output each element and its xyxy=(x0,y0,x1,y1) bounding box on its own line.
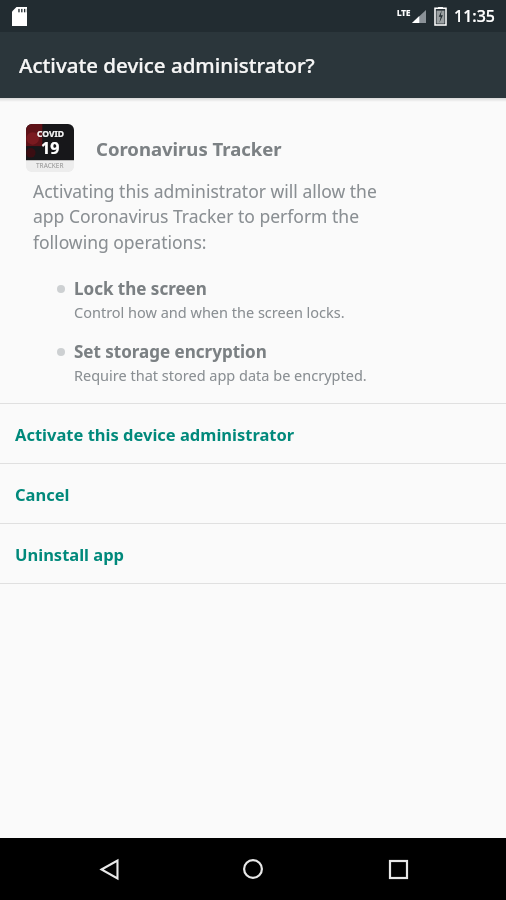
button[interactable]: Home xyxy=(217,838,289,900)
staticText: LTE xyxy=(397,7,411,18)
staticText: Uninstall app xyxy=(15,543,125,565)
button[interactable]: Recent apps xyxy=(362,838,434,900)
button[interactable]: Cancel xyxy=(0,464,506,523)
staticText: Cancel xyxy=(15,483,70,505)
button[interactable]: Back xyxy=(73,838,145,900)
staticText: Activating this administrator will allow… xyxy=(33,179,377,255)
button[interactable]: Uninstall app xyxy=(0,524,506,583)
staticText: Activate device administrator? xyxy=(19,51,315,79)
staticText: Activate this device administrator xyxy=(15,423,295,445)
staticText: Set storage encryption xyxy=(74,340,267,363)
button[interactable]: Activate this device administrator xyxy=(0,404,506,463)
staticText: 19 xyxy=(41,137,60,159)
staticText: COVID xyxy=(37,128,64,140)
staticText: Coronavirus Tracker xyxy=(96,136,282,161)
staticText: Require that stored app data be encrypte… xyxy=(74,365,367,385)
staticText: 11:35 xyxy=(454,5,495,27)
staticText: TRACKER xyxy=(36,161,64,170)
staticText: Lock the screen xyxy=(74,277,207,300)
staticText: Control how and when the screen locks. xyxy=(74,302,345,322)
